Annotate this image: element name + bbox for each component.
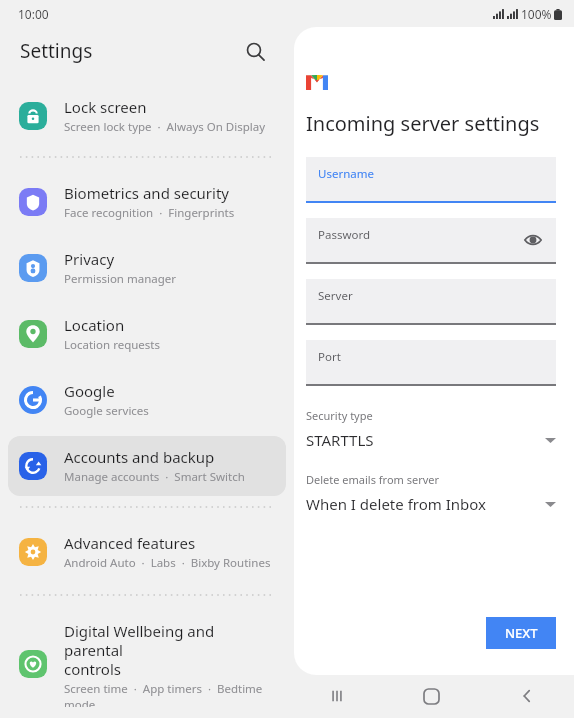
button[interactable]: Privacy xyxy=(8,238,286,298)
button[interactable]: Security type xyxy=(306,408,556,450)
button[interactable]: Biometrics and security xyxy=(8,172,286,232)
staticText: Face recognition · Fingerprints xyxy=(64,205,235,221)
staticText: Password xyxy=(318,227,371,243)
staticText: Android Auto · Labs · Bixby Routines xyxy=(64,555,271,571)
staticText: Screen lock type · Always On Display xyxy=(64,119,266,135)
button[interactable]: Advanced features xyxy=(8,522,286,582)
staticText: Lock screen xyxy=(64,97,147,117)
staticText: Settings xyxy=(20,38,93,64)
button[interactable]: Username xyxy=(306,157,556,203)
staticText: Manage accounts · Smart Switch xyxy=(64,469,245,485)
button[interactable]: Search xyxy=(238,34,272,68)
staticText: Advanced features xyxy=(64,533,196,553)
staticText: 100% xyxy=(521,6,552,22)
staticText: Port xyxy=(318,349,341,365)
button[interactable]: Back xyxy=(479,674,574,718)
button[interactable]: Port xyxy=(306,340,556,386)
staticText: Digital Wellbeing and parental controls xyxy=(64,621,274,679)
staticText: STARTTLS xyxy=(306,430,374,450)
button[interactable]: Digital Wellbeing and parental controls xyxy=(8,610,286,718)
staticText: Location requests xyxy=(64,337,160,353)
button[interactable]: Location xyxy=(8,304,286,364)
staticText: Biometrics and security xyxy=(64,183,230,203)
other: Show password xyxy=(522,229,544,251)
staticText: 10:00 xyxy=(18,6,49,22)
staticText: Incoming server settings xyxy=(306,110,540,137)
staticText: Google services xyxy=(64,403,149,419)
button[interactable]: Google xyxy=(8,370,286,430)
staticText: Screen time · App timers · Bedtime mode xyxy=(64,681,274,707)
button[interactable]: Password xyxy=(306,218,556,264)
staticText: Server xyxy=(318,288,353,304)
button[interactable]: Delete emails from server xyxy=(306,472,556,514)
staticText: Accounts and backup xyxy=(64,447,215,467)
staticText: When I delete from Inbox xyxy=(306,494,486,514)
button[interactable]: Recents xyxy=(290,674,384,718)
staticText: Security type xyxy=(306,408,373,423)
staticText: Google xyxy=(64,381,115,401)
staticText: NEXT xyxy=(505,624,538,642)
staticText: Delete emails from server xyxy=(306,472,440,487)
button[interactable]: Accounts and backup xyxy=(8,436,286,496)
staticText: Location xyxy=(64,315,125,335)
button[interactable]: Home xyxy=(384,674,479,718)
button[interactable]: Lock screen xyxy=(8,86,286,146)
staticText: Username xyxy=(318,166,374,182)
staticText: Privacy xyxy=(64,249,115,269)
button[interactable]: Server xyxy=(306,279,556,325)
staticText: Permission manager xyxy=(64,271,177,287)
button[interactable]: NEXT xyxy=(486,617,556,649)
